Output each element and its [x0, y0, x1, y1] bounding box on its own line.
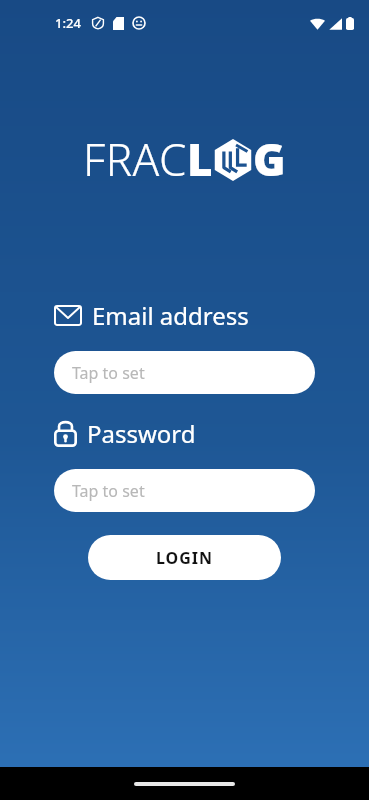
button[interactable]: Tap to set [54, 351, 315, 394]
staticText: LOGIN [156, 547, 214, 569]
staticText: Tap to set [72, 480, 145, 502]
button[interactable]: Tap to set [54, 469, 315, 512]
button[interactable]: LOGIN [88, 535, 281, 580]
staticText: Tap to set [72, 362, 145, 384]
staticText: L [187, 129, 213, 189]
staticText: 1:24 [55, 14, 81, 32]
staticText: G [253, 129, 286, 189]
staticText: FRAC [83, 129, 187, 189]
staticText: Email address [92, 299, 249, 332]
staticText: Password [87, 417, 196, 450]
